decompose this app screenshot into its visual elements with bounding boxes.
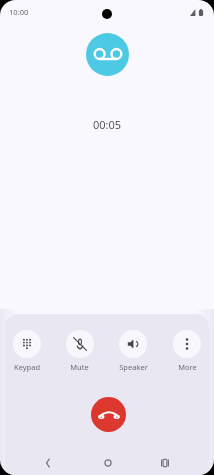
staticText: Keypad — [14, 362, 40, 372]
button[interactable]: Keypad — [0, 330, 53, 372]
button[interactable]: More — [160, 330, 214, 372]
button[interactable]: Speaker — [106, 330, 160, 372]
button[interactable]: Mute — [53, 330, 106, 372]
staticText: Mute — [70, 362, 89, 372]
button[interactable]: Voicemail — [86, 33, 129, 76]
button[interactable]: Recent apps — [150, 451, 179, 475]
staticText: 00:05 — [0, 117, 214, 132]
button[interactable]: Back — [33, 451, 62, 475]
button[interactable]: Home — [93, 451, 122, 475]
button[interactable]: End call — [91, 397, 126, 432]
staticText: More — [178, 362, 197, 372]
staticText: 10:00 — [9, 7, 29, 17]
staticText: Speaker — [119, 362, 148, 372]
